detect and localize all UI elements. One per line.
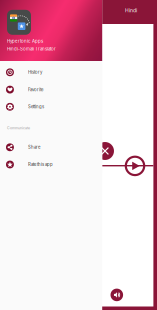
button[interactable]: Rate this app	[0, 156, 102, 173]
button[interactable]: Favorite	[0, 81, 102, 98]
staticText: History	[28, 70, 42, 75]
button[interactable]: Close menu	[96, 142, 114, 160]
button[interactable]: Speak translation	[110, 289, 123, 301]
staticText: Share	[28, 145, 40, 150]
staticText: Hindi	[125, 7, 137, 13]
button[interactable]: Share	[0, 139, 102, 156]
staticText: Rate this app	[28, 162, 53, 167]
button[interactable]: History	[0, 64, 102, 81]
button[interactable]: Settings	[0, 98, 102, 115]
staticText: Settings	[28, 104, 44, 109]
staticText: Hypertonic Apps	[7, 38, 43, 44]
button[interactable]: Translate	[126, 157, 144, 175]
staticText: Favorite	[28, 87, 43, 92]
staticText: Hindi-Somali Translator	[7, 46, 56, 51]
staticText: Communicate	[7, 126, 30, 130]
